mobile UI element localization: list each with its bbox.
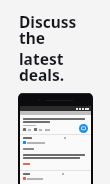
button[interactable] [20,115,91,134]
staticText: latest deals. [19,48,102,85]
button[interactable] [20,171,91,184]
staticText: Discuss the [19,11,102,48]
button[interactable]: Reply [79,124,88,133]
button[interactable] [20,135,91,170]
